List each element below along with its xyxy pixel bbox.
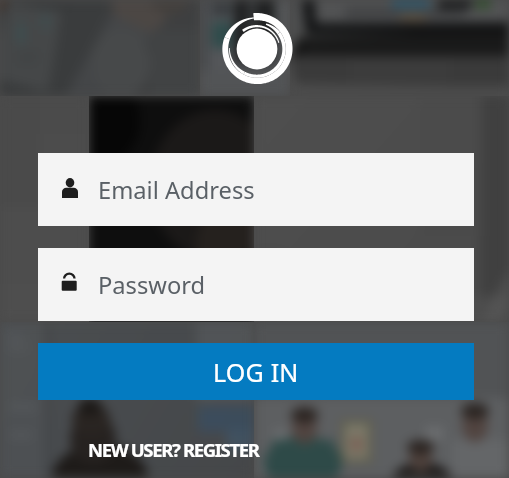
button[interactable]: Email Address — [38, 153, 474, 226]
staticText: Password — [98, 269, 206, 301]
staticText: LOG IN — [213, 355, 299, 389]
button[interactable]: LOG IN — [38, 343, 474, 400]
other: App logo — [221, 13, 293, 85]
button[interactable]: NEW USER? REGISTER — [88, 435, 259, 464]
staticText: Email Address — [98, 174, 255, 206]
button[interactable]: Password — [38, 248, 474, 321]
staticText: NEW USER? REGISTER — [88, 437, 259, 462]
